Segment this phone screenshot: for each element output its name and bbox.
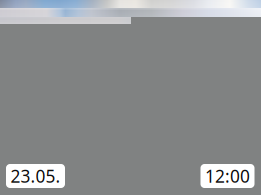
button[interactable]: 23.05. <box>6 164 65 188</box>
button[interactable]: 12:00 <box>200 164 254 188</box>
staticText: 12:00 <box>205 164 250 187</box>
staticText: 23.05. <box>10 164 60 187</box>
